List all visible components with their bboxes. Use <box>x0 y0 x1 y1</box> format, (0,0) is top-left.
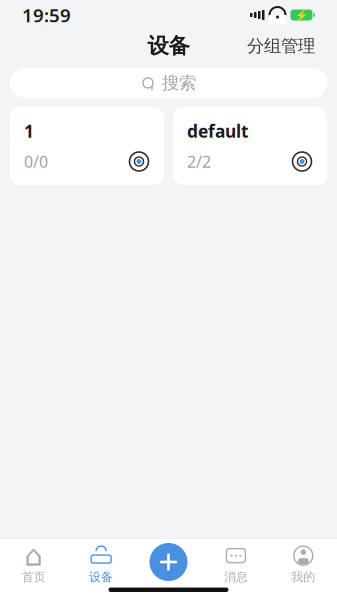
staticText: default <box>187 119 249 142</box>
staticText: 2/2 <box>187 151 211 172</box>
button[interactable]: 搜索 <box>0 62 337 98</box>
button[interactable]: ⌂ <box>0 544 67 586</box>
staticText: 分组管理 <box>247 35 315 57</box>
button[interactable]: 消息 <box>202 544 270 586</box>
button[interactable]: Add <box>135 541 202 589</box>
staticText: 0/0 <box>24 151 48 172</box>
staticText: ⚡ <box>295 9 308 21</box>
staticText: 首页 <box>22 570 46 584</box>
button[interactable]: 设备 <box>67 544 135 586</box>
staticText: 搜索 <box>162 72 196 94</box>
staticText: 消息 <box>224 570 248 584</box>
button[interactable]: 分组管理 <box>241 29 321 63</box>
staticText: ⌂ <box>24 539 43 572</box>
button[interactable]: 1 <box>10 107 164 185</box>
staticText: 设备 <box>89 570 113 584</box>
staticText: 设备 <box>147 33 189 59</box>
button[interactable]: 我的 <box>270 544 337 586</box>
staticText: 1 <box>24 119 34 142</box>
button[interactable]: default <box>173 107 327 185</box>
staticText: 19:59 <box>22 3 71 27</box>
staticText: 我的 <box>291 570 315 584</box>
